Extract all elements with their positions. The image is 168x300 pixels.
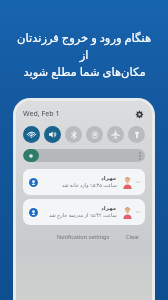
staticText: ساعت ۱۵:۴۲ از مدرسه خارج شد bbox=[49, 212, 117, 219]
button[interactable]: Clear bbox=[121, 231, 145, 242]
button[interactable]: Auto rotate bbox=[86, 126, 103, 143]
staticText: هنگام ورود و خروج فرزندتان از bbox=[12, 30, 156, 61]
button[interactable]: Airplane mode bbox=[107, 126, 124, 143]
staticText: Wed, Feb 1 bbox=[23, 109, 60, 119]
staticText: Notification settings bbox=[57, 233, 110, 240]
button[interactable]: Brightness bbox=[23, 149, 145, 162]
button[interactable]: Notification settings bbox=[52, 231, 115, 242]
button[interactable]: Wi-Fi bbox=[23, 126, 40, 143]
button[interactable]: Flashlight bbox=[128, 126, 145, 143]
staticText: ساعت ۱۵:۳۵ وارد خانه شد bbox=[62, 182, 117, 189]
staticText: مکان‌های شما مطلع شوید bbox=[23, 64, 146, 80]
button[interactable]: Sound bbox=[44, 126, 61, 143]
button[interactable]: Bluetooth bbox=[65, 126, 82, 143]
staticText: مهراد bbox=[101, 175, 117, 181]
staticText: Clear bbox=[126, 233, 140, 240]
button[interactable]: Settings bbox=[133, 108, 145, 120]
button[interactable]: مهراد bbox=[23, 199, 145, 225]
button[interactable]: مهراد bbox=[23, 169, 145, 195]
staticText: مهراد bbox=[101, 205, 117, 211]
